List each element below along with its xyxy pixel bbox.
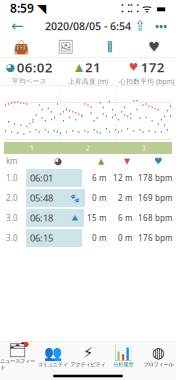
button[interactable]: ⚡︎ — [70, 342, 106, 372]
button[interactable]: Splits — [88, 36, 132, 58]
staticText: ♥︎ — [154, 156, 162, 166]
staticText: ♥︎ — [148, 39, 160, 54]
staticText: 6 m — [118, 213, 132, 223]
staticText: km — [6, 156, 17, 166]
staticText: ⚡︎ — [83, 344, 93, 361]
staticText: ◕ — [54, 156, 62, 166]
staticText: 06:01 — [30, 172, 53, 184]
staticText: ◍ — [152, 344, 165, 361]
staticText: ⛰ — [71, 214, 78, 222]
button[interactable]: Share — [130, 16, 150, 36]
staticText: アクティビティ — [70, 361, 105, 368]
staticText: 0 m — [92, 193, 106, 203]
button[interactable]: Heart rate — [132, 36, 176, 58]
staticText: 169 bpm — [138, 193, 172, 203]
staticText: プロフィール — [143, 361, 173, 368]
staticText: 1.0 — [6, 173, 18, 183]
staticText: ••• — [155, 19, 167, 33]
button[interactable]: 👥 — [35, 342, 70, 372]
button[interactable]: 2.0 — [0, 188, 176, 208]
button[interactable]: 3.0 — [0, 228, 176, 248]
staticText: 06:15 — [30, 232, 53, 244]
button[interactable]: 1.0 — [0, 168, 176, 188]
staticText: ▲ — [98, 156, 104, 166]
staticText: 2 m — [118, 193, 132, 203]
staticText: 🖼 — [57, 39, 74, 55]
staticText: ニュースフィード — [0, 358, 35, 371]
staticText: 3.0 — [6, 233, 18, 243]
staticText: 平均ペース — [12, 77, 47, 85]
staticText: 📊 — [114, 344, 132, 361]
staticText: ⇪ — [134, 18, 145, 33]
staticText: 06:02 — [17, 59, 53, 76]
button[interactable]: Photos — [44, 36, 88, 58]
staticText: 178 bpm — [138, 173, 172, 183]
staticText: ⫴ — [107, 40, 113, 53]
staticText: 心拍数平均 (bpm) — [119, 77, 174, 86]
staticText: 🐾 — [70, 193, 80, 202]
staticText: コミュニティ — [38, 361, 68, 368]
staticText: 172 — [141, 58, 165, 76]
button[interactable]: ◍ — [141, 342, 176, 372]
staticText: 分析履歴 — [113, 361, 133, 368]
staticText: 6 m — [92, 173, 106, 183]
staticText: 1 — [30, 144, 34, 152]
staticText: ◕ — [6, 61, 15, 73]
staticText: ▼ — [124, 156, 130, 166]
button[interactable]: More — [150, 16, 172, 36]
staticText: 3.0 — [6, 213, 18, 223]
staticText: 2020/08/05 - 6:54 — [45, 19, 131, 33]
staticText: ← — [11, 18, 23, 34]
staticText: 👜 — [13, 39, 30, 55]
staticText: 21 — [85, 58, 101, 76]
staticText: 12 m — [113, 173, 132, 183]
staticText: 0 m — [118, 233, 132, 243]
staticText: 🗂 — [8, 341, 27, 358]
staticText: 176 bpm — [138, 233, 172, 243]
staticText: 05:48 — [30, 192, 53, 204]
staticText: 8:59 ◥ — [10, 0, 46, 16]
staticText: ▲ — [75, 61, 83, 73]
staticText: ♥︎ — [129, 61, 139, 73]
button[interactable]: Back — [4, 16, 30, 36]
staticText: 15 m — [87, 213, 106, 223]
button[interactable]: 🗂 — [0, 342, 35, 372]
staticText: 2.0 — [6, 193, 18, 203]
button[interactable]: 📊 — [106, 342, 141, 372]
button[interactable]: Gear — [0, 36, 44, 58]
button[interactable]: 3.0 — [0, 208, 176, 228]
staticText: 👥 — [44, 344, 62, 361]
staticText: ⸬⸬ ᯤ ▬ — [121, 1, 166, 15]
staticText: 06:18 — [30, 212, 53, 224]
staticText: 168 bpm — [138, 213, 172, 223]
staticText: 2 — [86, 144, 90, 152]
staticText: 上昇高度 (m) — [68, 77, 108, 86]
staticText: 0 m — [92, 233, 106, 243]
staticText: 3 — [142, 144, 146, 152]
